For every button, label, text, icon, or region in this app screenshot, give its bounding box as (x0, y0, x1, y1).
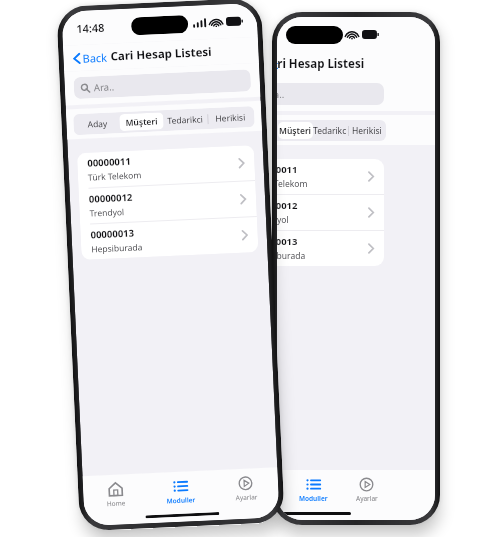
staticText: Cari Hesap Listesi (277, 56, 365, 72)
staticText: Home (107, 498, 126, 508)
button[interactable]: Tedarikci (163, 110, 208, 129)
staticText: Müşteri (125, 115, 159, 129)
staticText: 00000013 (90, 227, 135, 242)
staticText: Tedarikci (313, 125, 348, 137)
button[interactable]: 00000013 (80, 217, 258, 260)
staticText: Müşteri (279, 125, 312, 137)
staticText: Aday (87, 118, 108, 131)
staticText: Türk Telekom (88, 169, 142, 184)
staticText: Back (277, 57, 279, 72)
button[interactable]: Müşteri (278, 122, 313, 139)
staticText: Hepsiburada (91, 241, 143, 255)
button[interactable]: Moduller (287, 475, 340, 505)
staticText: Tedarikci (167, 113, 204, 127)
staticText: 00000011 (87, 155, 131, 170)
staticText: Ayarlar (356, 494, 378, 503)
staticText: 00000012 (277, 199, 298, 212)
staticText: 14:48 (76, 19, 120, 36)
button[interactable]: Ayarlar (213, 472, 279, 505)
button[interactable]: 00000012 (277, 195, 384, 230)
button[interactable]: 00000013 (277, 231, 384, 266)
staticText: Trendyol (89, 206, 125, 220)
staticText: 14:48 (277, 27, 293, 42)
staticText: Herikisi (352, 125, 382, 137)
button[interactable]: Back (277, 54, 283, 75)
button[interactable]: Ayarlar (340, 475, 393, 505)
button[interactable]: 00000011 (77, 145, 255, 188)
staticText: Ayarlar (235, 492, 258, 502)
staticText: Back (82, 50, 108, 66)
button[interactable]: Ara.. (277, 83, 384, 105)
staticText: Herikisi (215, 111, 246, 125)
button[interactable]: Müşteri (119, 112, 164, 131)
button[interactable]: Herikisi (349, 122, 384, 139)
staticText: Hepsiburada (277, 250, 306, 262)
staticText: 00000013 (277, 235, 298, 248)
button[interactable]: Home (277, 475, 287, 505)
staticText: Trendyol (277, 214, 289, 226)
button[interactable]: Ara.. (73, 69, 251, 99)
staticText: Ara.. (94, 80, 115, 94)
button[interactable]: Herikisi (208, 108, 253, 127)
staticText: Cari Hesap Listesi (110, 44, 213, 64)
staticText: Türk Telekom (277, 178, 308, 190)
button[interactable]: Moduller (148, 475, 214, 508)
staticText: 00000011 (277, 163, 298, 176)
staticText: 00000012 (89, 191, 133, 206)
button[interactable]: Aday (75, 114, 120, 133)
button[interactable]: Back (69, 46, 112, 69)
button[interactable]: Tedarikci (313, 122, 348, 139)
staticText: Ara.. (277, 88, 285, 101)
button[interactable]: 00000012 (78, 181, 257, 224)
button[interactable]: 00000011 (277, 159, 384, 194)
button[interactable]: Home (83, 478, 149, 511)
staticText: Moduller (299, 494, 328, 503)
staticText: Moduller (166, 495, 196, 505)
